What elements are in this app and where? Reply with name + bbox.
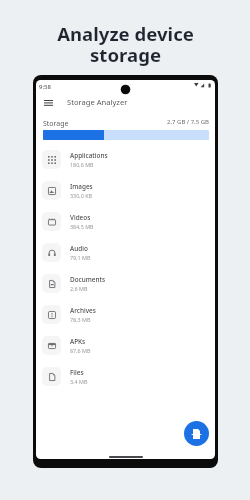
staticText: Documents (70, 275, 106, 284)
button[interactable]: Files (36, 361, 215, 392)
staticText: 2,6 MB (70, 285, 88, 292)
staticText: Audio (70, 244, 88, 253)
staticText: 2,7 GB / 7,5 GB (167, 118, 209, 126)
button[interactable]: Images (36, 175, 215, 206)
staticText: Images (70, 182, 93, 191)
staticText: 9:58 (39, 83, 51, 91)
staticText: Applications (70, 151, 108, 160)
button[interactable]: Audio (36, 237, 215, 268)
staticText: 79,1 MB (70, 254, 91, 261)
button[interactable]: Applications (36, 144, 215, 175)
button[interactable]: Documents (36, 268, 215, 299)
button[interactable]: Videos (36, 206, 215, 237)
button[interactable]: APKs (36, 330, 215, 361)
staticText: APKs (70, 337, 86, 346)
staticText: 3,4 MB (70, 378, 88, 385)
staticText: 180,6 MB (70, 161, 94, 168)
staticText: 87,6 MB (70, 347, 91, 354)
staticText: Files (70, 368, 84, 377)
staticText: Archives (70, 306, 96, 315)
button[interactable]: Open navigation drawer (38, 94, 59, 112)
staticText: 330,0 KB (70, 192, 93, 199)
staticText: Analyze device storage (57, 21, 194, 67)
staticText: Videos (70, 213, 91, 222)
staticText: Storage (43, 119, 69, 129)
staticText: Storage Analyzer (67, 97, 128, 107)
button[interactable]: Scan document (184, 421, 209, 446)
staticText: 78,3 MB (70, 316, 91, 323)
staticText: 384,5 MB (70, 223, 94, 230)
button[interactable]: Archives (36, 299, 215, 330)
